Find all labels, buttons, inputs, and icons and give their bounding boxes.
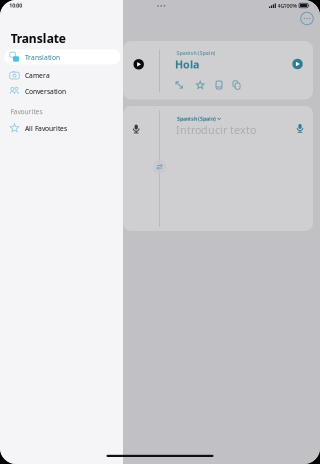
button[interactable]: Copy: [230, 79, 242, 91]
staticText: All Favourites: [25, 124, 67, 133]
button[interactable]: Dictionary: [213, 79, 225, 91]
staticText: 10:00: [9, 2, 22, 9]
button[interactable]: Translation: [4, 49, 120, 64]
staticText: Translate: [11, 30, 66, 46]
button[interactable]: Camera: [4, 67, 120, 82]
staticText: 100%: [283, 2, 297, 9]
staticText: 4G: [277, 2, 284, 9]
staticText: Hola: [175, 57, 199, 71]
staticText: Favourites: [11, 107, 43, 116]
staticText: Introducir texto: [176, 123, 256, 137]
button[interactable]: Speak translation: [291, 119, 309, 137]
button[interactable]: Expand: [173, 79, 185, 91]
button[interactable]: Play translation: [287, 54, 307, 74]
staticText: Conversation: [25, 87, 66, 96]
staticText: Camera: [25, 71, 50, 80]
button[interactable]: All Favourites: [4, 120, 120, 135]
button[interactable]: More options: [297, 9, 316, 28]
button[interactable]: Swap languages: [152, 159, 168, 175]
staticText: Translation: [25, 53, 60, 62]
staticText: Spanish (Spain): [177, 115, 216, 122]
staticText: Spanish (Spain): [176, 49, 215, 56]
button[interactable]: Speak original: [127, 120, 145, 138]
button[interactable]: Add to favourites: [194, 79, 206, 91]
button[interactable]: Conversation: [4, 83, 120, 98]
button[interactable]: Play original: [129, 54, 149, 74]
